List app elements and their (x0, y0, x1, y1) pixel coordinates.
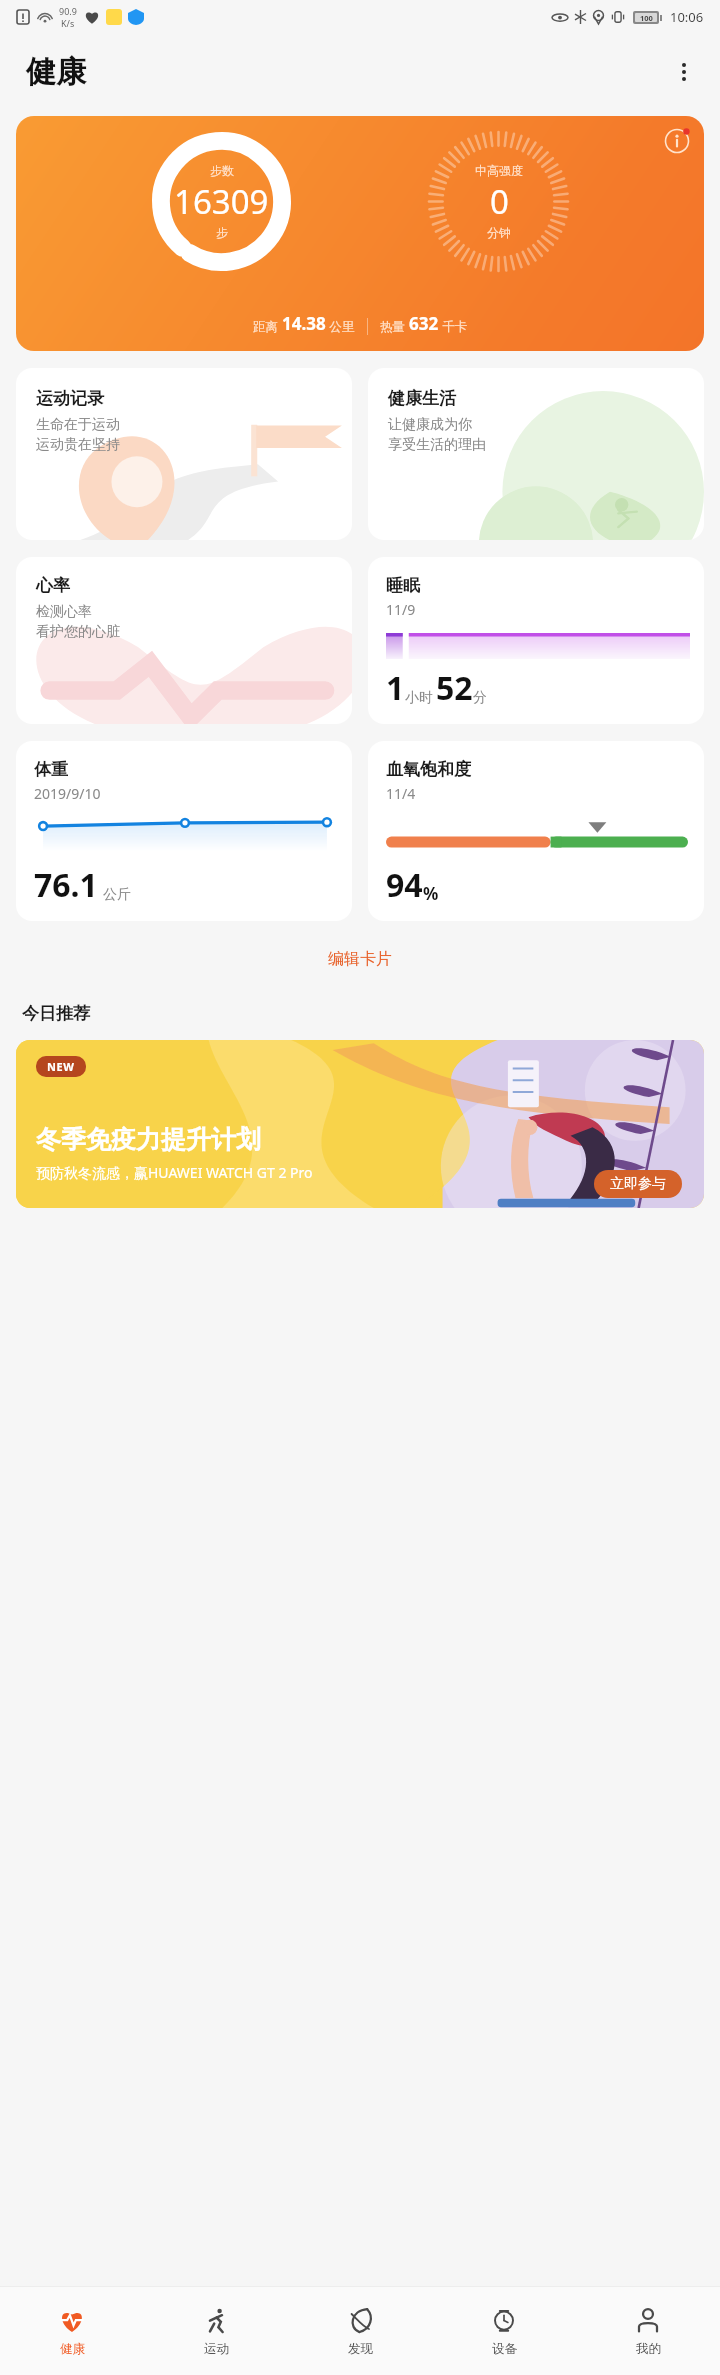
staticText: 血氧饱和度 (386, 759, 471, 780)
button[interactable]: 健康生活 (368, 368, 704, 540)
button[interactable]: 我的 (576, 2287, 720, 2375)
staticText: 千卡 (439, 318, 468, 335)
staticText: 1 (386, 666, 405, 710)
staticText: 健康 (60, 2341, 85, 2357)
staticText: 0 (490, 179, 509, 224)
button[interactable]: 健康 (0, 2287, 144, 2375)
button[interactable]: 运动 (144, 2287, 288, 2375)
staticText: 我的 (636, 2341, 661, 2357)
staticText: 10:06 (670, 8, 704, 26)
staticText: 运动记录 (36, 388, 104, 409)
staticText: 生命在于运动 (36, 416, 120, 434)
staticText: 设备 (492, 2341, 517, 2357)
staticText: 检测心率 (36, 603, 92, 621)
staticText: % (423, 882, 439, 905)
staticText: 编辑卡片 (328, 949, 392, 969)
staticText: 90.9 (59, 5, 77, 17)
button[interactable]: Info (16, 116, 704, 351)
button[interactable]: 编辑卡片 (310, 943, 410, 975)
staticText: 76.1 (34, 863, 98, 907)
button[interactable]: More options (662, 50, 706, 94)
staticText: 距离 (253, 318, 282, 335)
staticText: 94 (386, 863, 423, 907)
staticText: 100 (640, 13, 653, 22)
staticText: 中高强度 (475, 163, 523, 178)
staticText: 步数 (210, 163, 234, 178)
button[interactable]: 设备 (432, 2287, 576, 2375)
staticText: 步 (216, 225, 228, 240)
button[interactable]: 心率 (16, 557, 352, 724)
staticText: 公里 (326, 318, 355, 335)
staticText: 健康生活 (388, 388, 456, 409)
staticText: 睡眠 (386, 575, 420, 596)
staticText: 52 (436, 666, 473, 710)
staticText: 看护您的心脏 (36, 623, 120, 641)
staticText: 健康 (26, 53, 86, 91)
staticText: 冬季免疫力提升计划 (36, 1124, 261, 1155)
staticText: 热量 (380, 318, 409, 335)
staticText: 让健康成为你 (388, 416, 472, 434)
staticText: 体重 (34, 759, 68, 780)
button[interactable]: 立即参与 (594, 1170, 682, 1198)
staticText: 运动贵在坚持 (36, 436, 120, 454)
staticText: 分 (473, 689, 487, 707)
staticText: 16309 (174, 179, 269, 224)
staticText: 公斤 (103, 886, 131, 904)
staticText: 运动 (204, 2341, 229, 2357)
staticText: 享受生活的理由 (388, 436, 486, 454)
staticText: K/s (61, 17, 75, 29)
staticText: 11/4 (386, 784, 416, 803)
button[interactable]: 发现 (288, 2287, 432, 2375)
staticText: 632 (409, 312, 439, 335)
button[interactable]: 体重 (16, 741, 352, 921)
staticText: 分钟 (487, 225, 511, 240)
staticText: 11/9 (386, 600, 416, 619)
staticText: 预防秋冬流感，赢HUAWEI WATCH GT 2 Pro (36, 1163, 313, 1182)
staticText: 发现 (348, 2341, 373, 2357)
staticText: 心率 (36, 575, 70, 596)
staticText: 立即参与 (610, 1175, 666, 1193)
staticText: NEW (47, 1059, 75, 1074)
button[interactable]: NEW (16, 1040, 704, 1208)
button[interactable]: 血氧饱和度 (368, 741, 704, 921)
button[interactable]: 睡眠 (368, 557, 704, 724)
button[interactable]: Info (660, 124, 694, 158)
staticText: 2019/9/10 (34, 784, 101, 803)
button[interactable]: 运动记录 (16, 368, 352, 540)
staticText: 小时 (405, 689, 433, 707)
staticText: 14.38 (282, 312, 326, 335)
staticText: 今日推荐 (22, 1003, 90, 1024)
